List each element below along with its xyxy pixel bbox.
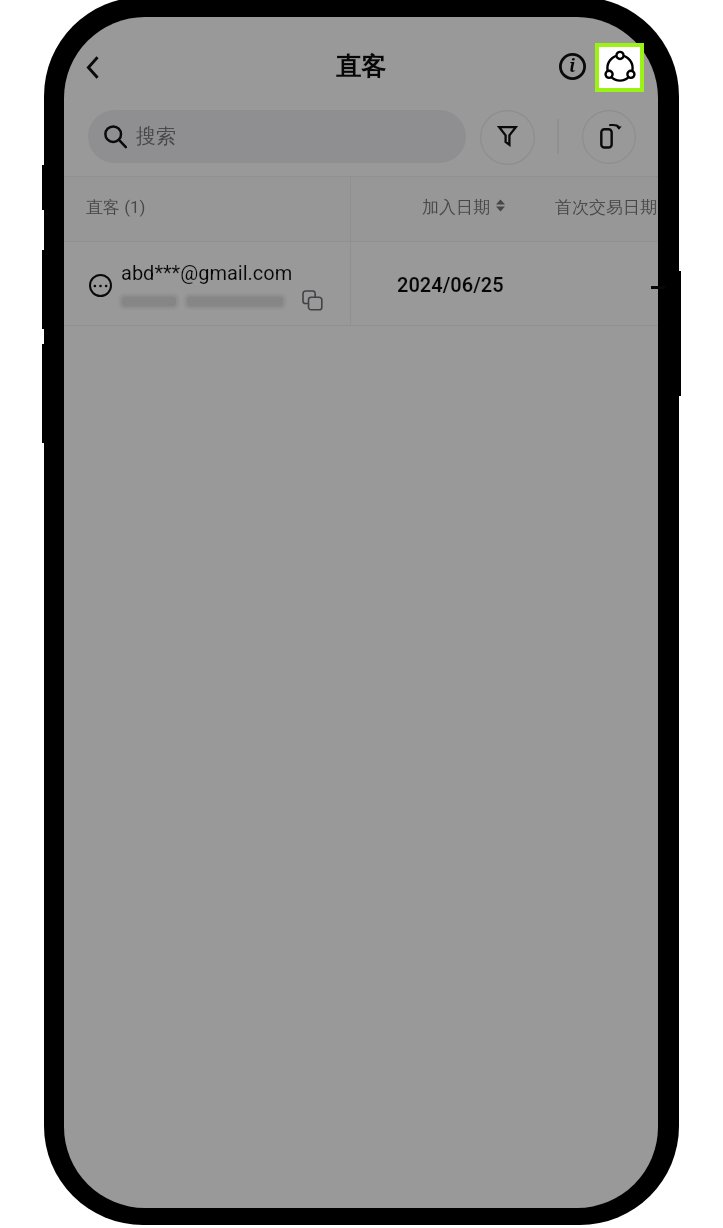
staticText: 2024/06/25 — [397, 273, 504, 296]
button[interactable]: Rotate — [582, 110, 636, 164]
button[interactable]: More options — [64, 242, 658, 325]
button[interactable]: 搜索 — [88, 110, 466, 163]
button[interactable]: Share — [599, 47, 640, 88]
button[interactable]: More options — [89, 274, 112, 297]
button[interactable]: Information — [548, 42, 596, 90]
staticText: 搜索 — [136, 124, 176, 149]
staticText: i — [569, 53, 576, 78]
staticText: 直客 — [336, 51, 386, 82]
staticText: 加入日期 — [422, 197, 490, 218]
button[interactable]: Copy — [298, 286, 326, 314]
button[interactable]: Filter — [480, 110, 535, 165]
staticText: abd***@gmail.com — [121, 261, 293, 284]
staticText: 直客 (1) — [86, 197, 146, 218]
button[interactable]: Back — [68, 43, 116, 91]
button[interactable]: 加入日期 — [414, 177, 505, 241]
staticText: 首次交易日期 — [555, 197, 657, 218]
